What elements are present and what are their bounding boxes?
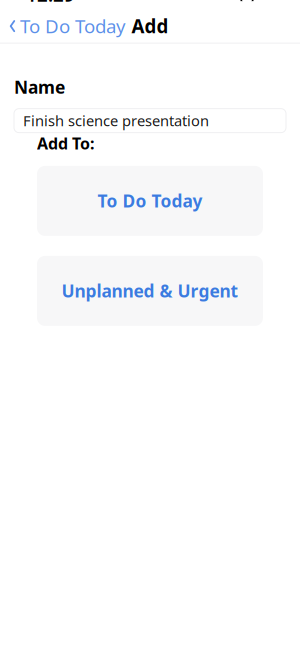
staticText: Unplanned & Urgent	[61, 279, 238, 302]
button[interactable]: Unplanned & Urgent	[0, 256, 300, 326]
button[interactable]: To Do Today	[0, 166, 300, 236]
staticText: 12:29	[26, 0, 75, 7]
staticText: Add	[131, 14, 168, 38]
button[interactable]: To Do Today	[0, 8, 126, 44]
staticText: Add To:	[37, 133, 94, 154]
staticText: To Do Today	[97, 189, 202, 212]
staticText: Name	[14, 76, 65, 99]
staticText: To Do Today	[20, 14, 126, 38]
staticText: Finish science presentation	[23, 111, 209, 130]
